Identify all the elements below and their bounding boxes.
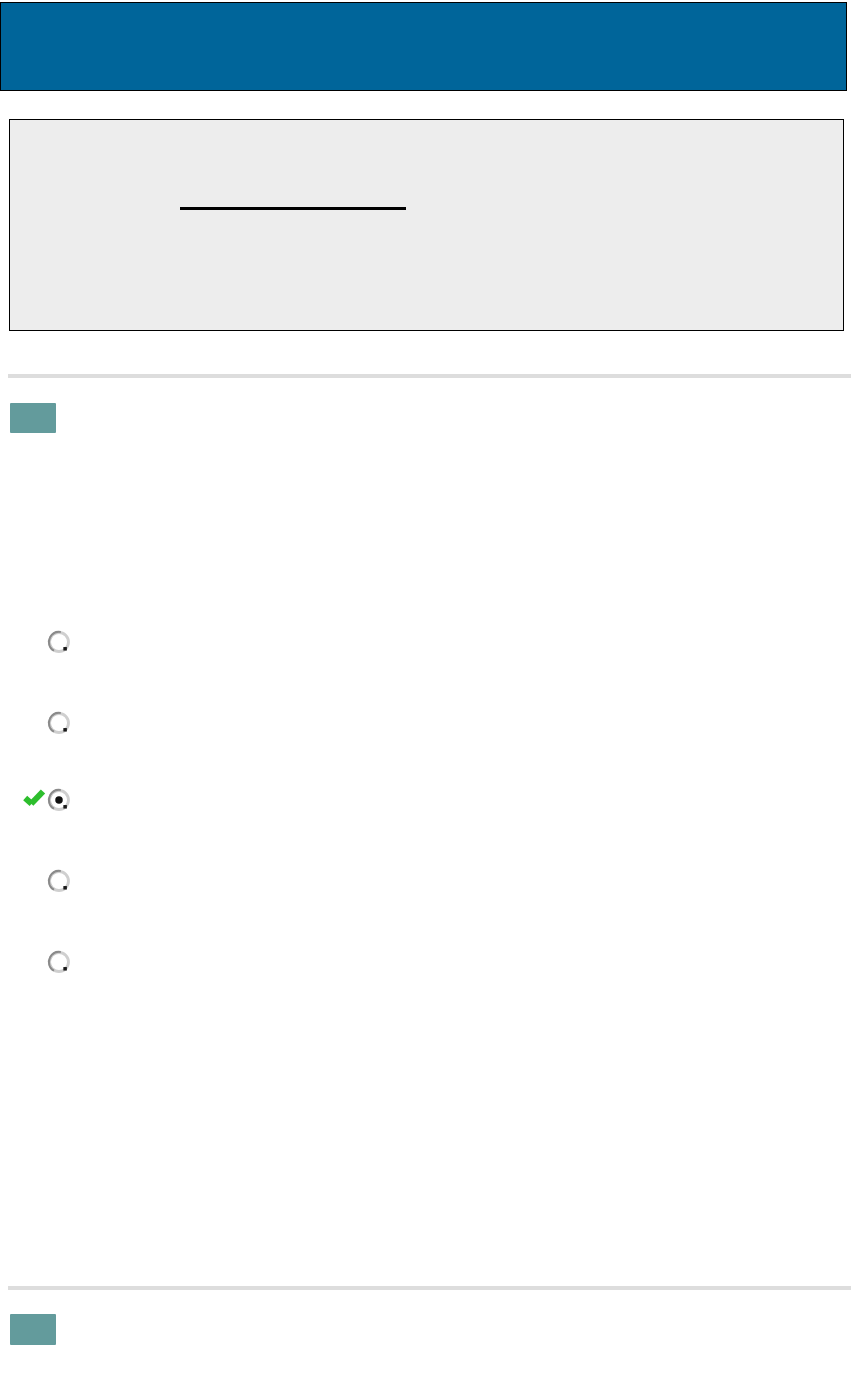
other: Correct answer [24,789,44,807]
button[interactable]: Page banner [0,2,847,91]
button[interactable]: Option 4 [48,870,70,892]
button[interactable]: Option 2 [48,712,70,734]
button[interactable]: Option 5 [48,951,70,973]
button[interactable]: Option 3, selected [48,789,70,811]
button[interactable]: Option 1 [48,631,70,653]
